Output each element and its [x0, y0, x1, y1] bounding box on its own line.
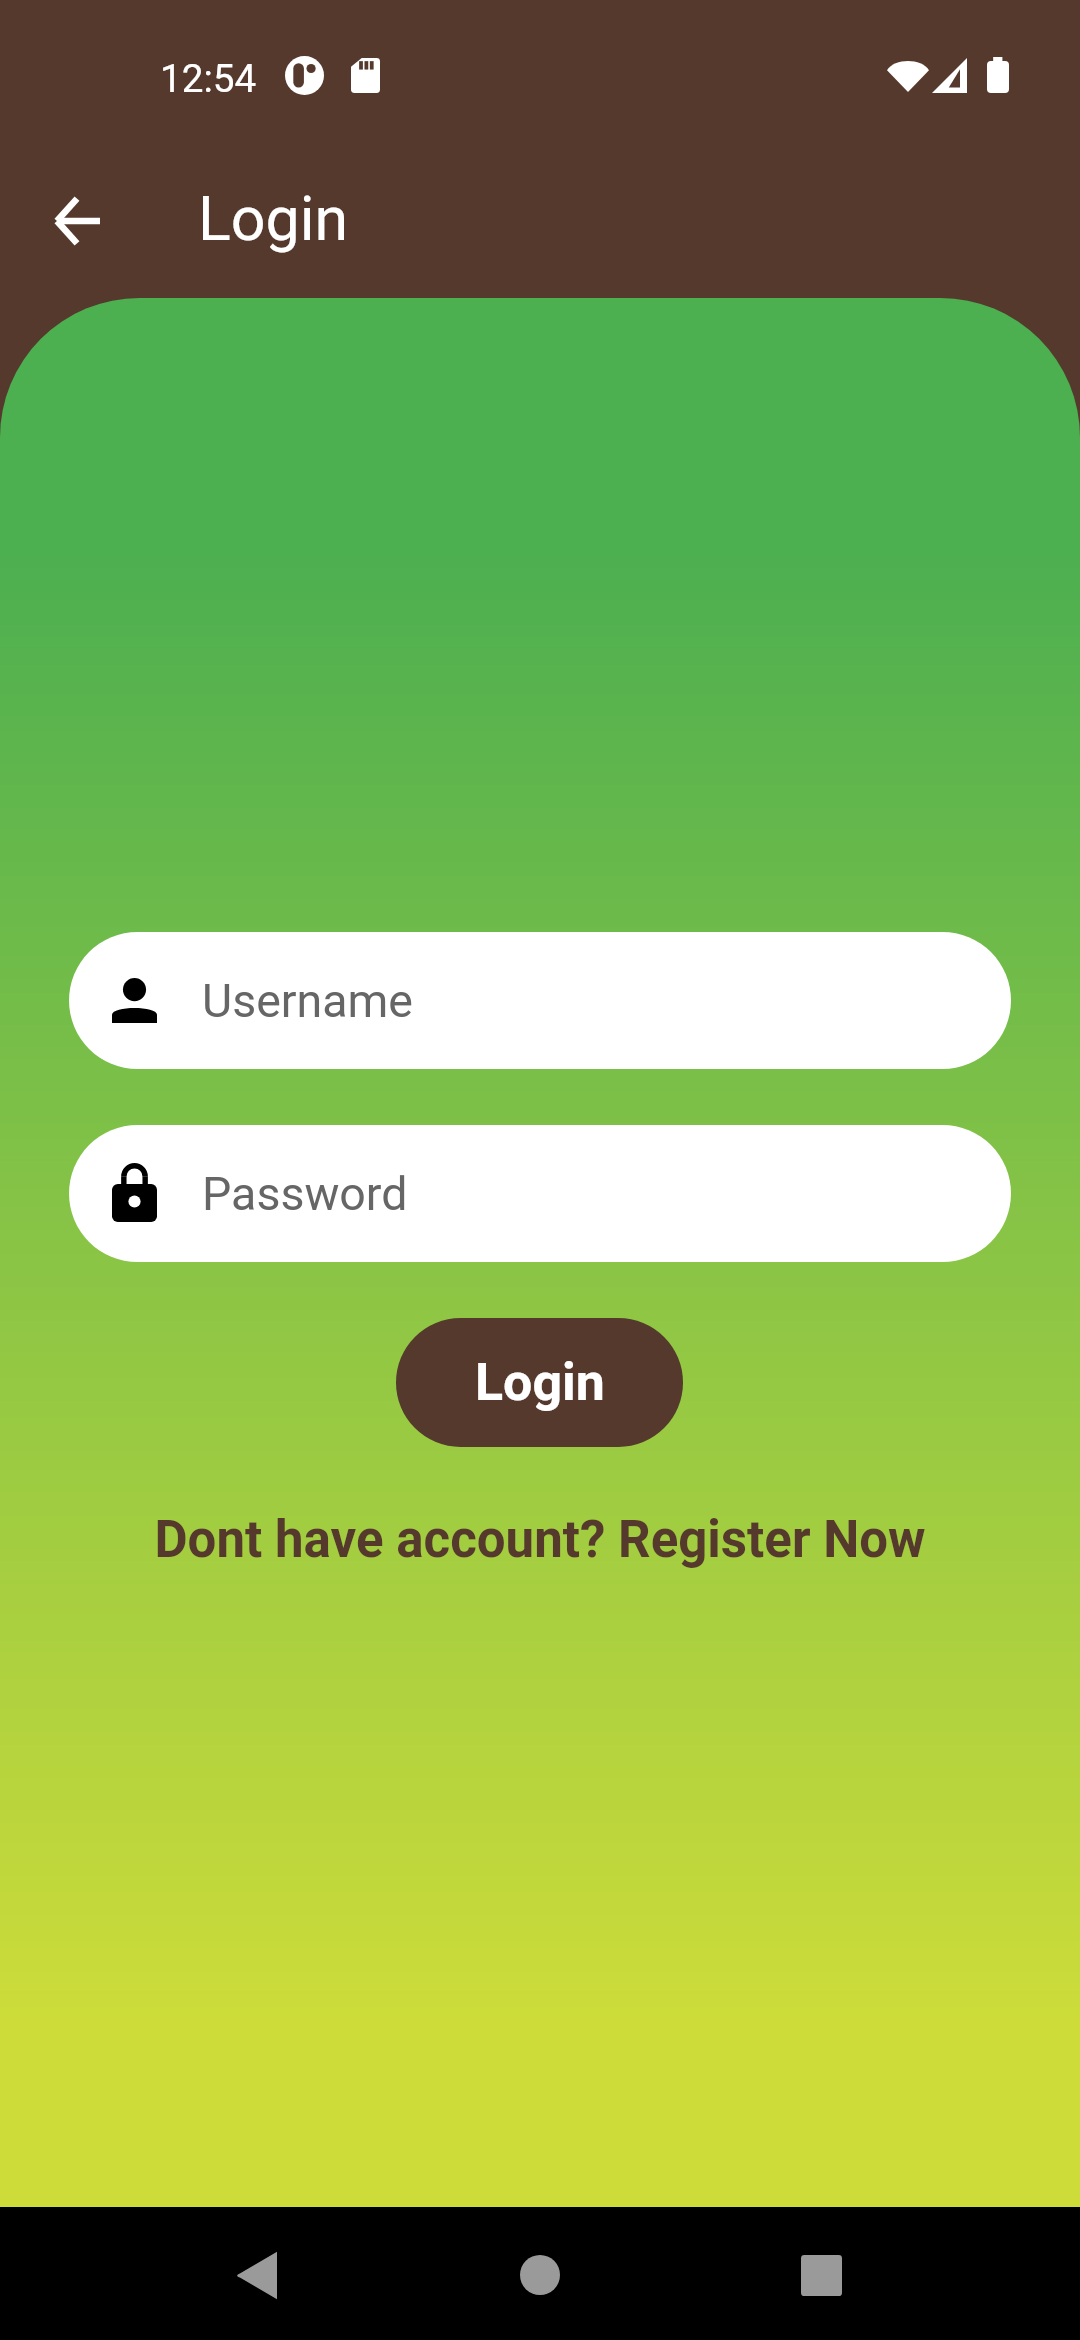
staticText: Login	[198, 184, 349, 255]
button[interactable]: Back	[35, 179, 119, 263]
button[interactable]: Password	[69, 1125, 1011, 1262]
button[interactable]: Back	[222, 2245, 290, 2305]
button[interactable]: Home	[500, 2251, 580, 2299]
button[interactable]: Login	[396, 1318, 683, 1447]
staticText: 12:54	[160, 56, 257, 101]
staticText: Login	[475, 1352, 605, 1413]
staticText: Dont have account? Register Now	[154, 1510, 926, 1570]
button[interactable]: Recents	[781, 2251, 861, 2299]
button[interactable]: Dont have account? Register Now	[0, 1510, 1080, 1570]
button[interactable]: Username	[69, 932, 1011, 1069]
staticText: Username	[202, 974, 413, 1028]
staticText: Password	[202, 1167, 408, 1221]
